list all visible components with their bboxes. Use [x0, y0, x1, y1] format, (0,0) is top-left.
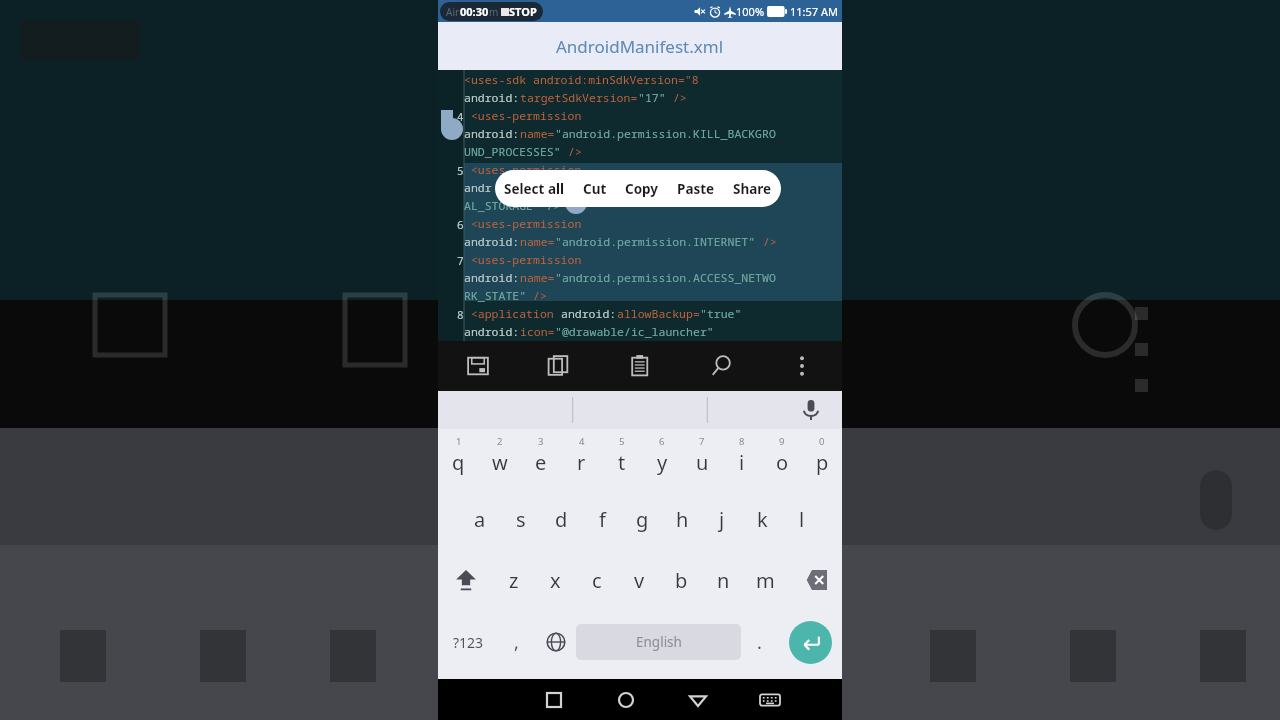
button[interactable]: h: [662, 489, 702, 549]
button[interactable]: l: [782, 489, 822, 549]
button[interactable]: 1: [438, 429, 479, 489]
staticText: Share: [733, 180, 772, 198]
staticText: "android.permission.KILL_BACKGRO: [555, 126, 776, 142]
button[interactable]: Paste: [599, 341, 680, 391]
button[interactable]: 6: [642, 429, 682, 489]
staticText: ERN: [492, 180, 734, 196]
staticText: <uses-permission: [464, 216, 582, 232]
button[interactable]: 0: [802, 429, 842, 489]
staticText: UND_PROCESSES": [464, 144, 568, 160]
staticText: "android.permission.ACCESS_NETWO: [555, 270, 776, 286]
staticText: 100%: [736, 4, 765, 19]
button[interactable]: Save: [438, 341, 518, 391]
staticText: l: [799, 506, 805, 533]
button[interactable]: x: [534, 549, 576, 611]
button[interactable]: b: [660, 549, 702, 611]
staticText: "17": [638, 90, 666, 106]
button[interactable]: Back: [662, 679, 734, 720]
button[interactable]: Search: [680, 341, 761, 391]
staticText: 4: [579, 435, 585, 448]
button[interactable]: z: [493, 549, 534, 611]
button[interactable]: ,: [498, 611, 535, 673]
button[interactable]: 9: [762, 429, 802, 489]
staticText: j: [719, 506, 725, 533]
button[interactable]: Shift: [438, 549, 493, 611]
button[interactable]: c: [576, 549, 618, 611]
button[interactable]: k: [742, 489, 782, 549]
staticText: <uses-permission: [464, 108, 582, 124]
staticText: 00:30: [460, 4, 489, 19]
button[interactable]: Voice input: [796, 395, 826, 425]
button[interactable]: Cut: [574, 170, 616, 207]
staticText: <uses-sdk android:minSdkVersion="8: [464, 72, 699, 88]
button[interactable]: s: [500, 489, 541, 549]
button[interactable]: Change language: [535, 611, 576, 673]
staticText: RK_STATE": [464, 288, 533, 304]
staticText: android:: [464, 126, 520, 142]
staticText: name=: [520, 126, 555, 142]
button[interactable]: 4: [561, 429, 602, 489]
button[interactable]: f: [582, 489, 622, 549]
button[interactable]: Copy: [518, 341, 599, 391]
button[interactable]: Enter: [778, 611, 842, 673]
button[interactable]: AndroidManifest.xml: [438, 22, 842, 70]
staticText: "@drawable/ic_launcher": [555, 324, 714, 340]
staticText: />: [756, 234, 777, 250]
button[interactable]: ?123: [438, 611, 498, 673]
staticText: <application: [464, 306, 561, 322]
staticText: 1: [456, 435, 462, 448]
button[interactable]: v: [618, 549, 660, 611]
staticText: 9: [779, 435, 785, 448]
button[interactable]: Backspace: [786, 549, 842, 611]
staticText: "android.permission.INTERNET": [555, 234, 756, 250]
staticText: />: [568, 144, 582, 160]
button[interactable]: Recents: [518, 679, 590, 720]
staticText: android:: [464, 234, 520, 250]
staticText: c: [592, 567, 602, 594]
button[interactable]: Select all: [495, 170, 574, 207]
button[interactable]: g: [622, 489, 662, 549]
staticText: 7: [699, 435, 705, 448]
button[interactable]: j: [702, 489, 742, 549]
staticText: 5: [457, 163, 464, 178]
staticText: 2: [497, 435, 503, 448]
button[interactable]: 3: [520, 429, 561, 489]
button[interactable]: Share: [724, 170, 781, 207]
staticText: <uses-permission: [464, 162, 582, 178]
staticText: m: [489, 5, 499, 19]
staticText: u: [696, 449, 709, 476]
staticText: targetSdkVersion=: [520, 90, 638, 106]
staticText: STOP: [509, 4, 537, 19]
button[interactable]: More options: [761, 341, 842, 391]
staticText: 6: [659, 435, 665, 448]
staticText: android:: [464, 90, 520, 106]
button[interactable]: 5: [602, 429, 642, 489]
button[interactable]: Hide keyboard: [734, 679, 806, 720]
staticText: allowBackup=: [617, 306, 700, 322]
staticText: p: [816, 449, 829, 476]
button[interactable]: 7: [682, 429, 722, 489]
button[interactable]: Paste: [668, 170, 724, 207]
staticText: 8: [739, 435, 745, 448]
staticText: Copy: [625, 180, 659, 198]
button[interactable]: d: [541, 489, 582, 549]
staticText: o: [776, 449, 789, 476]
button[interactable]: Air: [440, 2, 543, 21]
staticText: 3: [538, 435, 544, 448]
button[interactable]: a: [459, 489, 500, 549]
staticText: .: [757, 630, 762, 655]
staticText: android:: [464, 270, 520, 286]
staticText: z: [509, 567, 519, 594]
button[interactable]: m: [744, 549, 786, 611]
button[interactable]: Home: [590, 679, 662, 720]
staticText: />: [666, 90, 687, 106]
button[interactable]: .: [741, 611, 778, 673]
staticText: android:: [464, 324, 520, 340]
button[interactable]: 2: [479, 429, 520, 489]
button[interactable]: English: [576, 624, 741, 660]
staticText: g: [636, 506, 649, 533]
button[interactable]: Copy: [616, 170, 668, 207]
staticText: 4: [457, 109, 464, 124]
button[interactable]: n: [702, 549, 744, 611]
button[interactable]: 8: [722, 429, 762, 489]
